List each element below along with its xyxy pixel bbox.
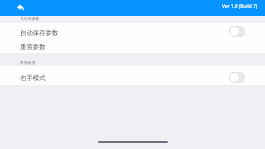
button[interactable] xyxy=(0,38,265,53)
staticText: Ver 1.0 (Build 7) xyxy=(222,3,258,10)
button[interactable] xyxy=(0,23,265,38)
button[interactable]: Toggle switch, off xyxy=(229,72,245,82)
button[interactable] xyxy=(0,66,265,85)
staticText: 界面设置 xyxy=(20,60,36,65)
button[interactable]: Toggle switch, off xyxy=(229,26,245,36)
staticText: 飞行器参数 xyxy=(20,16,40,21)
button[interactable]: Back xyxy=(17,4,24,11)
staticText: 自动保存参数 xyxy=(20,29,59,37)
staticText: 右手模式 xyxy=(20,74,46,82)
staticText: 重置参数 xyxy=(20,43,46,51)
